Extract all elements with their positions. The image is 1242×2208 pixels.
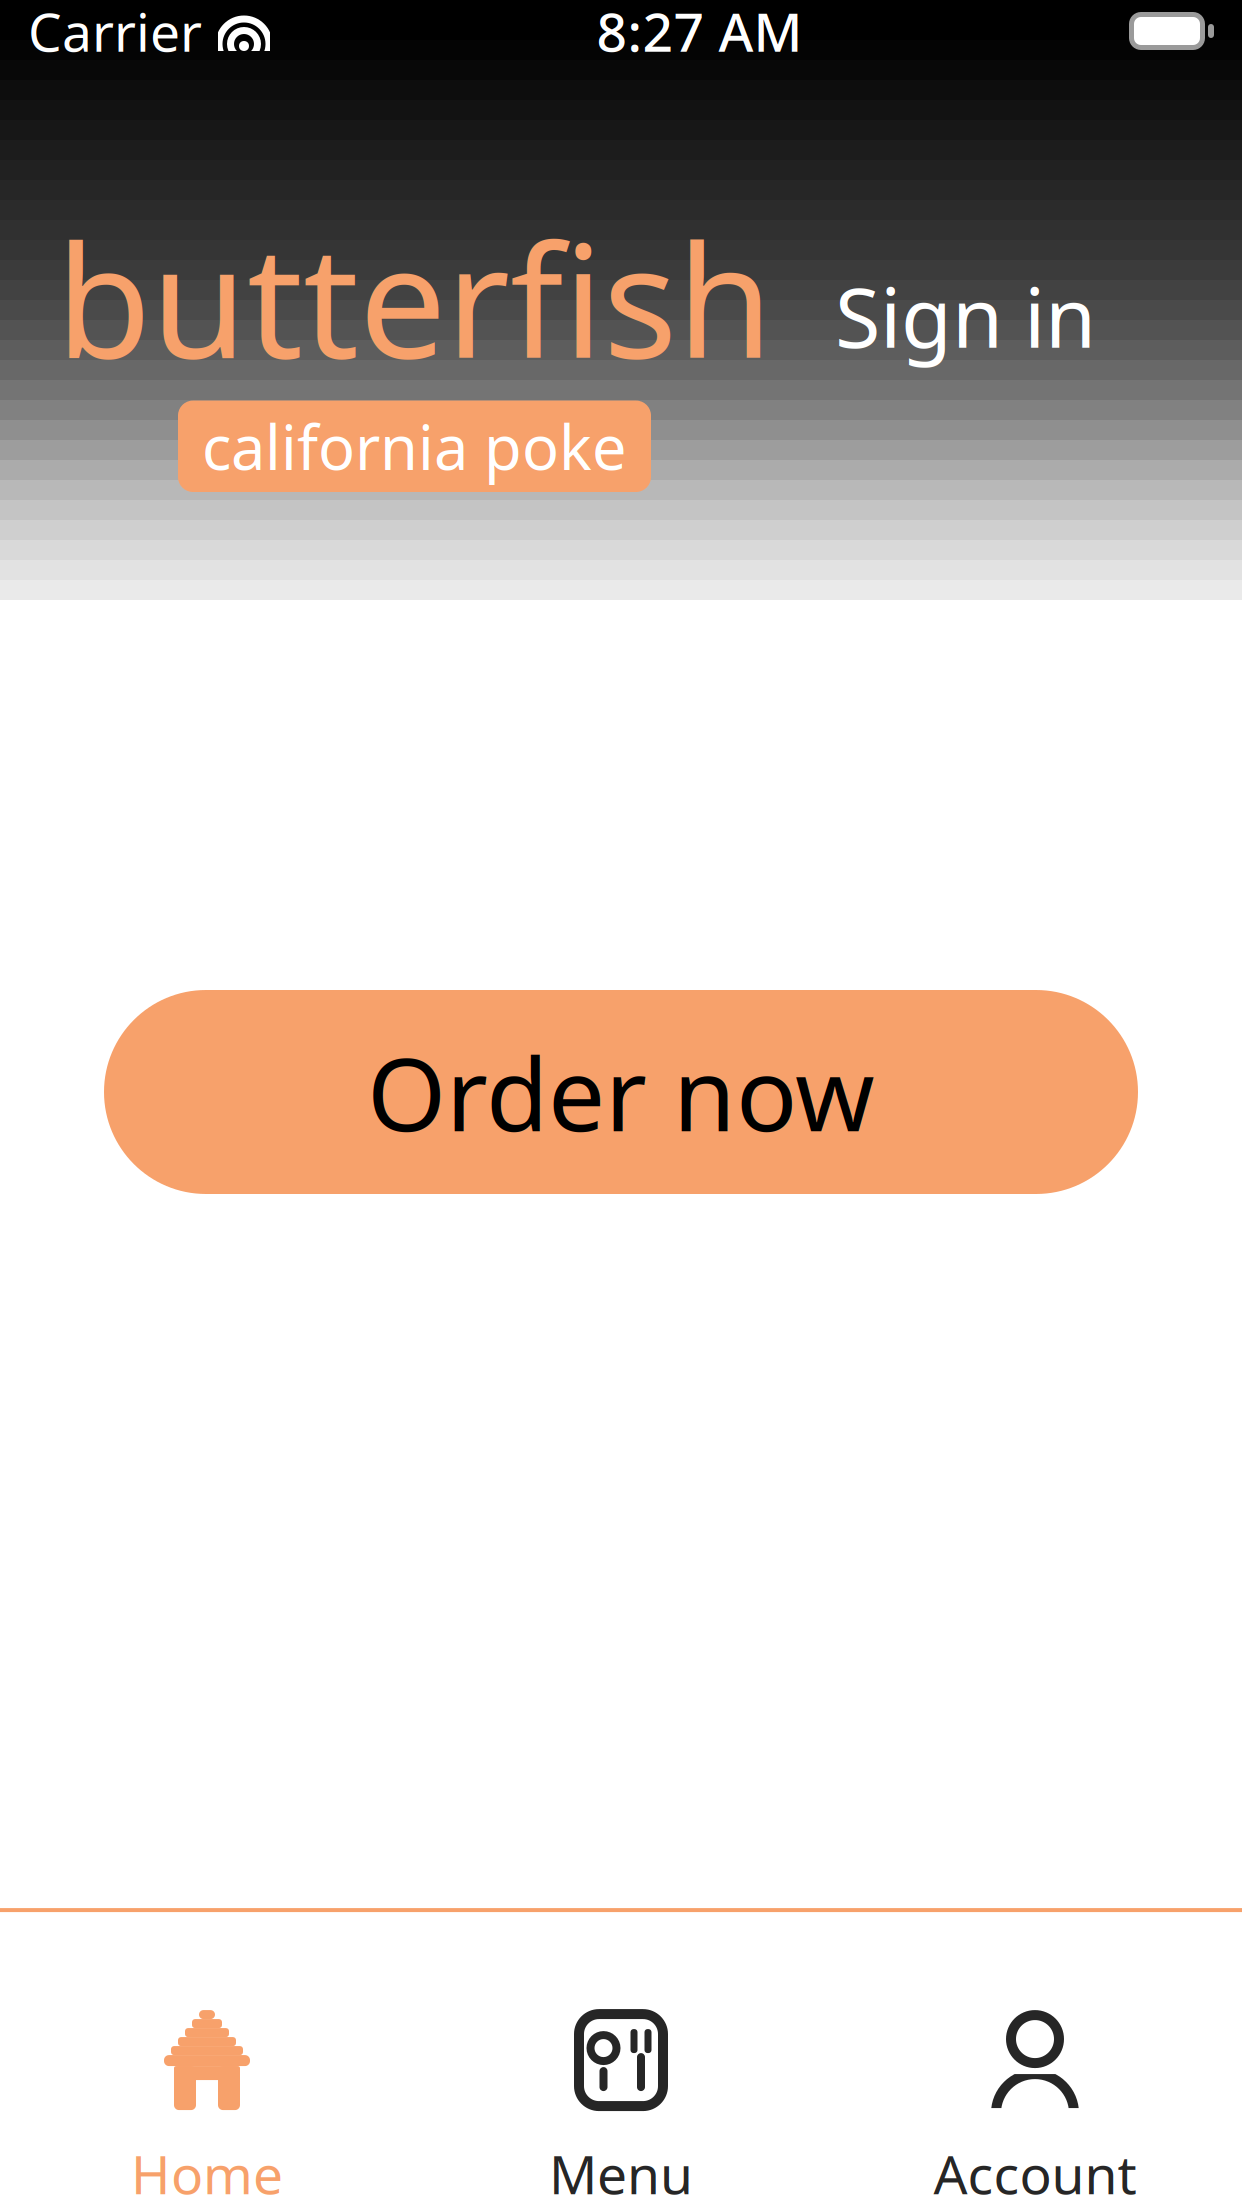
button[interactable]: Order now: [104, 990, 1138, 1194]
staticText: Carrier: [28, 0, 202, 66]
staticText: Menu: [549, 2138, 693, 2208]
staticText: california poke: [202, 406, 627, 487]
staticText: Account: [933, 2138, 1136, 2208]
button[interactable]: Account: [828, 2000, 1242, 2208]
button[interactable]: Home: [0, 2000, 414, 2208]
button[interactable]: Sign in: [835, 261, 1096, 426]
button[interactable]: Menu: [414, 2000, 828, 2208]
staticText: butterfish: [56, 195, 773, 401]
staticText: Sign in: [835, 261, 1096, 370]
staticText: Home: [131, 2138, 283, 2208]
staticText: Order now: [367, 1025, 875, 1159]
staticText: 8:27 AM: [596, 0, 802, 66]
